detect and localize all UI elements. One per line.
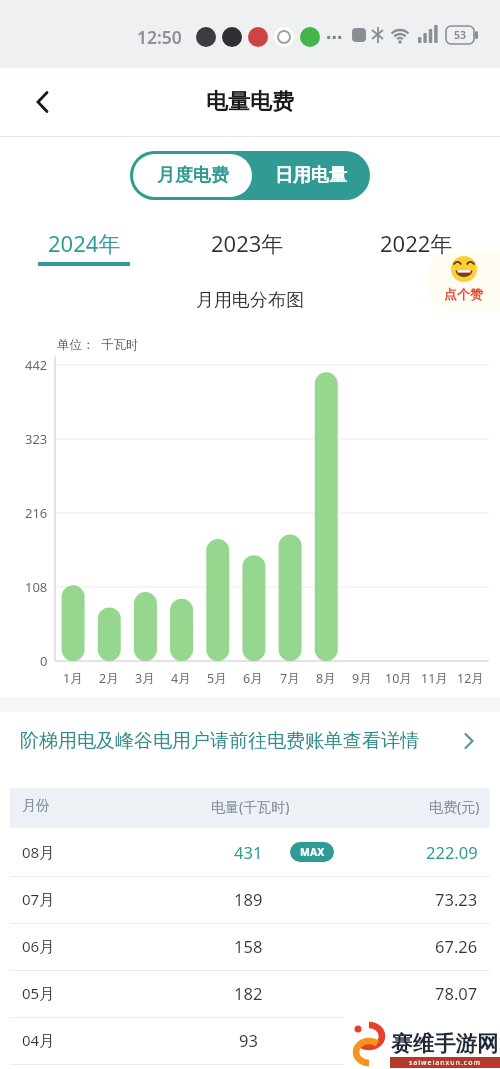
staticText: 189 [234,888,263,910]
staticText: 12月 [457,670,484,687]
button[interactable]: 07月 [0,876,500,923]
staticText: 7月 [280,670,300,687]
staticText: 点个赞 [444,286,483,302]
staticText: 06月 [22,936,55,956]
staticText: 电费(元) [429,797,480,816]
staticText: 05月 [22,983,55,1003]
staticText: 3月 [135,670,155,687]
button[interactable] [427,252,500,312]
staticText: MAX [300,845,325,859]
staticText: 11月 [421,670,448,687]
staticText: 323 [25,430,48,448]
staticText: 12:50 [137,25,182,49]
staticText: 08月 [22,842,55,862]
staticText: 108 [25,578,48,596]
staticText: 6月 [243,670,263,687]
staticText: 单位： 千瓦时 [57,336,139,353]
staticText: 4月 [171,670,191,687]
button[interactable]: 月度电费 [133,154,252,197]
staticText: 73.23 [435,888,478,910]
staticText: 月用电分布图 [196,289,304,312]
button[interactable] [20,82,64,122]
staticText: 442 [25,356,48,374]
staticText: 93 [239,1029,258,1051]
staticText: 10月 [385,670,412,687]
staticText: 04月 [22,1030,55,1050]
staticText: 216 [25,504,48,522]
staticText: 67.26 [435,935,478,957]
staticText: 电量(千瓦时) [211,797,290,816]
button[interactable] [187,220,307,270]
button[interactable]: 08月 [0,828,500,876]
staticText: 月份 [22,797,50,815]
staticText: 182 [234,982,263,1004]
staticText: 2月 [99,670,119,687]
staticText: 阶梯用电及峰谷电用户请前往电费账单查看详情 [20,729,419,753]
staticText: 1月 [63,670,83,687]
staticText: 2022年 [380,228,453,258]
staticText: ⋯ [326,28,342,47]
staticText: 53 [454,28,467,42]
button[interactable] [356,220,476,270]
staticText: 9月 [352,670,372,687]
staticText: 2023年 [211,228,284,258]
button[interactable]: 阶梯用电及峰谷电用户请前往电费账单查看详情 [0,712,500,776]
staticText: 222.09 [426,841,478,863]
button[interactable]: 04月 [0,1017,500,1064]
staticText: saiweianxun.com [409,1058,481,1068]
staticText: 0 [40,652,48,670]
staticText: 日用电量 [275,164,347,187]
staticText: 月度电费 [157,164,229,187]
staticText: 07月 [22,889,55,909]
button[interactable]: 日用电量 [252,151,370,200]
button[interactable]: 06月 [0,923,500,970]
staticText: 5月 [207,670,227,687]
staticText: 78.07 [435,982,478,1004]
staticText: 赛维手游网 [391,1030,499,1057]
staticText: 2024年 [48,228,121,258]
staticText: 431 [234,841,263,863]
staticText: 电量电费 [206,88,294,116]
staticText: 158 [234,935,263,957]
staticText: 8月 [316,670,336,687]
button[interactable] [24,220,144,270]
button[interactable]: 05月 [0,970,500,1017]
